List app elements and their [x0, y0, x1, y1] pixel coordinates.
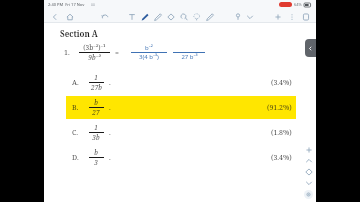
- staticText: D.: [72, 153, 79, 163]
- button[interactable]: Highlighter tool: [204, 11, 215, 22]
- button[interactable]: Pen tool: [139, 11, 150, 22]
- button[interactable]: Eraser tool: [178, 11, 189, 22]
- button[interactable]: Zoom in: [303, 144, 314, 155]
- staticText: (3.4%): [271, 78, 292, 88]
- staticText: .: [109, 103, 111, 113]
- staticText: (3b⁻²)⁻¹: [83, 43, 106, 52]
- staticText: AA: [91, 3, 95, 7]
- button[interactable]: A.: [60, 70, 310, 95]
- button[interactable]: Add page: [272, 11, 283, 22]
- button[interactable]: Open side panel: [305, 39, 316, 57]
- button[interactable]: Page up: [303, 155, 314, 166]
- button[interactable]: Back: [49, 11, 60, 22]
- button[interactable]: Save note: [300, 11, 311, 22]
- staticText: b: [94, 98, 98, 107]
- staticText: A.: [72, 78, 79, 88]
- button[interactable]: Undo: [99, 11, 110, 22]
- staticText: (91.2%): [267, 103, 292, 113]
- staticText: =: [115, 48, 119, 58]
- button[interactable]: Page down: [303, 177, 314, 188]
- button[interactable]: Text tool: [126, 11, 137, 22]
- staticText: Section A: [60, 28, 98, 39]
- staticText: .: [109, 153, 111, 163]
- button[interactable]: Shape tool: [165, 11, 176, 22]
- staticText: b: [94, 148, 98, 157]
- button[interactable]: C.: [60, 120, 310, 145]
- staticText: 1.: [64, 48, 70, 58]
- staticText: C.: [72, 128, 79, 138]
- staticText: 3: [94, 158, 98, 167]
- button[interactable]: Color picker: [232, 11, 243, 22]
- button[interactable]: Fit page: [303, 166, 314, 177]
- button[interactable]: Home: [64, 11, 75, 22]
- staticText: 3b: [92, 133, 100, 142]
- button[interactable]: Lasso tool: [191, 11, 202, 22]
- staticText: b⁻²: [145, 44, 153, 52]
- staticText: .: [109, 78, 111, 88]
- staticText: B.: [72, 103, 79, 113]
- staticText: 27b: [91, 83, 102, 92]
- staticText: 64%: [294, 2, 302, 7]
- staticText: 27 b⁻³: [181, 53, 198, 61]
- button[interactable]: Overflow menu: [286, 11, 297, 22]
- button[interactable]: Pencil tool: [152, 11, 163, 22]
- staticText: (3.4%): [271, 153, 292, 163]
- staticText: 3(4 b⁻³): [139, 53, 159, 61]
- staticText: (1.8%): [271, 128, 292, 138]
- button[interactable]: Settings: [304, 190, 313, 199]
- staticText: 9b⁻³: [88, 53, 101, 62]
- button[interactable]: More tool options: [244, 11, 255, 22]
- staticText: 2:40 PM Fri 17 Nov: [48, 2, 85, 7]
- staticText: 27: [92, 108, 100, 117]
- button[interactable]: D.: [60, 145, 310, 170]
- staticText: 1: [94, 73, 98, 82]
- staticText: 1: [94, 123, 98, 132]
- button[interactable]: B.: [60, 95, 310, 120]
- staticText: .: [109, 128, 111, 138]
